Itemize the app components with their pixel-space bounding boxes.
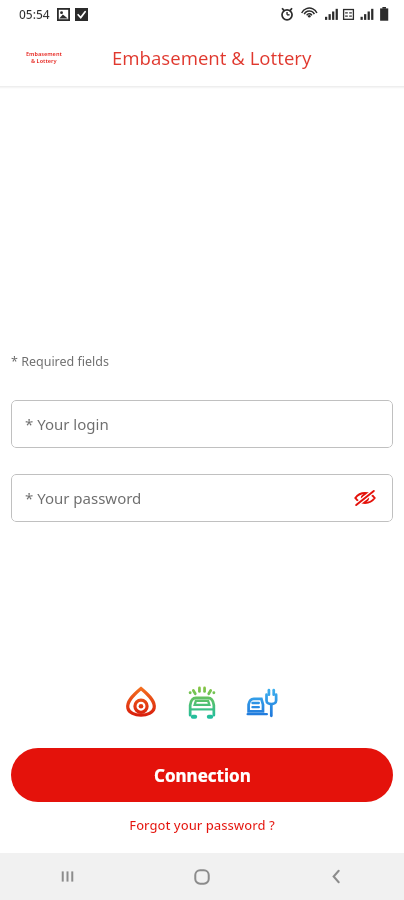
staticText: Embasement [26,50,62,57]
button[interactable]: Fuel [118,680,164,726]
staticText: & Lottery [31,57,57,64]
button[interactable]: * Your password [11,474,393,522]
button[interactable]: Electric charging [240,680,286,726]
button[interactable]: Forgot your password ? [121,813,283,837]
staticText: * Your password [25,488,142,508]
staticText: * Your login [25,414,109,434]
button[interactable]: Car wash [179,680,225,726]
button[interactable]: Show password [351,484,379,512]
staticText: 05:54 [19,6,50,22]
button[interactable]: Home [134,853,269,900]
staticText: * Required fields [11,353,109,370]
button[interactable]: Connection [11,748,393,802]
staticText: Embasement & Lottery [112,45,312,70]
button[interactable]: * Your login [11,400,393,448]
button[interactable]: Back [269,853,404,900]
staticText: Connection [154,764,251,787]
button[interactable]: Recent apps [0,853,134,900]
